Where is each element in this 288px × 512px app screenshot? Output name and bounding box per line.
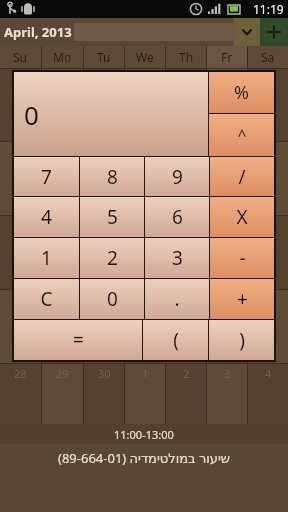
button[interactable]: 31 (0, 69, 41, 141)
button[interactable]: 6 (42, 438, 83, 511)
button[interactable]: 8 (80, 157, 144, 196)
button[interactable]: Expand month list (234, 18, 260, 46)
staticText: 11 (180, 144, 193, 159)
button[interactable]: 2 (80, 238, 144, 278)
staticText: 21 (14, 292, 27, 307)
button[interactable]: ( (143, 320, 208, 360)
button[interactable]: 19 (207, 216, 247, 289)
button[interactable]: 13 (248, 142, 288, 215)
button[interactable]: 18 (166, 216, 206, 289)
staticText: 9 (172, 164, 183, 190)
button[interactable]: 23 (84, 290, 124, 363)
button[interactable]: + (210, 279, 274, 319)
staticText: 2 (101, 71, 108, 86)
button[interactable]: 7 (84, 438, 124, 511)
button[interactable]: . (145, 279, 209, 319)
staticText: 11:00-13:00 (114, 427, 174, 442)
staticText: 3 (142, 71, 149, 86)
button[interactable]: 7 (14, 157, 79, 196)
button[interactable]: 3 (125, 69, 165, 141)
button[interactable]: 15 (42, 216, 83, 289)
staticText: 5 (224, 71, 231, 86)
button[interactable]: 25 (166, 290, 206, 363)
button[interactable]: 8 (42, 142, 83, 215)
button[interactable]: 9 (166, 438, 206, 511)
button[interactable]: 6 (248, 69, 288, 141)
staticText: 0 (24, 97, 39, 132)
button[interactable]: 3 (145, 238, 209, 278)
staticText: 19 (221, 218, 234, 233)
button[interactable]: April, 2013 (0, 18, 74, 46)
staticText: 1 (41, 245, 52, 271)
button[interactable]: 6 (145, 197, 209, 237)
button[interactable]: 0 (80, 279, 144, 319)
staticText: / (238, 164, 246, 190)
staticText: 18 (180, 218, 193, 233)
button[interactable]: 21 (0, 290, 41, 363)
button[interactable]: ) (209, 320, 274, 360)
button[interactable]: C (14, 279, 79, 319)
button[interactable]: - (210, 238, 274, 278)
staticText: 10 (221, 440, 234, 455)
button[interactable]: 7 (0, 142, 41, 215)
staticText: 9 (101, 144, 108, 159)
button[interactable]: 29 (42, 364, 83, 437)
staticText: ) (239, 327, 245, 353)
button[interactable]: 11 (166, 142, 206, 215)
button[interactable]: 0 (14, 72, 208, 156)
staticText: 23 (98, 292, 111, 307)
staticText: 9 (183, 440, 190, 455)
staticText: 13 (262, 144, 275, 159)
staticText: 3 (172, 245, 183, 271)
button[interactable]: Add event (260, 18, 288, 46)
button[interactable]: 1 (42, 69, 83, 141)
button[interactable]: 30 (84, 364, 124, 437)
button[interactable]: 2 (166, 364, 206, 437)
staticText: 2 (107, 245, 118, 271)
staticText: Th (179, 49, 194, 65)
staticText: Fr (221, 49, 233, 65)
button[interactable]: 10 (125, 142, 165, 215)
button[interactable]: 28 (0, 364, 41, 437)
button[interactable]: 12 (207, 142, 247, 215)
button[interactable]: 27 (248, 290, 288, 363)
button[interactable]: / (210, 157, 274, 196)
button[interactable]: 10 (207, 438, 247, 511)
button[interactable]: = (14, 320, 142, 360)
button[interactable]: 22 (42, 290, 83, 363)
staticText: 4 (265, 366, 272, 381)
button[interactable]: 9 (145, 157, 209, 196)
staticText: 31 (14, 71, 27, 86)
button[interactable]: 1 (14, 238, 79, 278)
button[interactable]: 8 (125, 438, 165, 511)
button[interactable]: שיעור במולטימדיה (89-664-01) (0, 444, 288, 472)
staticText: Tu (97, 49, 111, 65)
button[interactable]: 20 (248, 216, 288, 289)
staticText: 3 (224, 366, 231, 381)
button[interactable]: ^ (209, 114, 274, 156)
button[interactable]: 16 (84, 216, 124, 289)
button[interactable]: 24 (125, 290, 165, 363)
staticText: 11 (262, 440, 275, 455)
button[interactable]: X (210, 197, 274, 237)
staticText: 24 (139, 292, 152, 307)
button[interactable]: 5 (80, 197, 144, 237)
button[interactable]: 14 (0, 216, 41, 289)
button[interactable]: 3 (207, 364, 247, 437)
staticText: 7 (41, 164, 52, 190)
button[interactable]: 1 (125, 364, 165, 437)
button[interactable]: 26 (207, 290, 247, 363)
button[interactable]: 5 (207, 69, 247, 141)
button[interactable]: 4 (14, 197, 79, 237)
button[interactable]: 17 (125, 216, 165, 289)
staticText: C (40, 286, 53, 312)
button[interactable]: % (209, 72, 274, 113)
staticText: 0 (107, 286, 118, 312)
staticText: 26 (221, 292, 234, 307)
button[interactable]: 2 (84, 69, 124, 141)
button[interactable]: 9 (84, 142, 124, 215)
button[interactable]: 4 (166, 69, 206, 141)
